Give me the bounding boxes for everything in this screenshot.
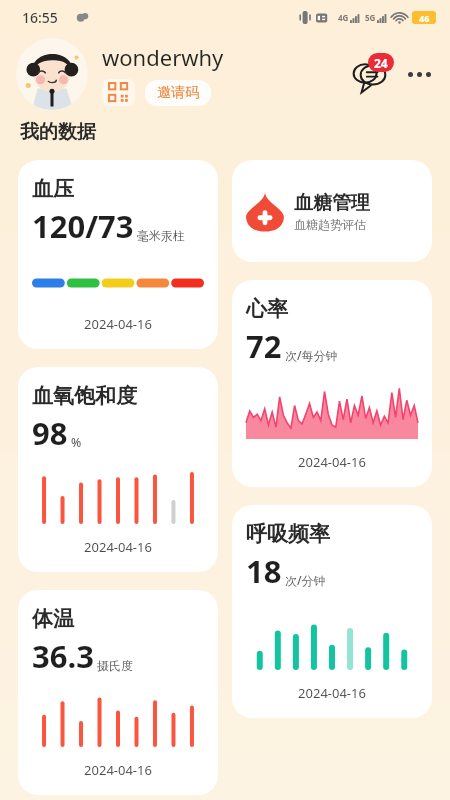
button[interactable]: 呼吸频率 — [232, 505, 432, 718]
staticText: 次/每分钟 — [285, 347, 338, 363]
staticText: 2024-04-16 — [246, 453, 418, 471]
staticText: 邀请码 — [157, 84, 199, 102]
staticText: 98 — [32, 412, 68, 454]
staticText: 5G — [365, 12, 376, 23]
button[interactable]: Messages — [350, 51, 396, 97]
staticText: 血糖趋势评估 — [294, 217, 366, 232]
staticText: 2024-04-16 — [32, 538, 204, 556]
staticText: 体温 — [32, 606, 74, 632]
staticText: 2024-04-16 — [32, 761, 204, 779]
staticText: 4G — [338, 12, 349, 23]
button[interactable]: 血压 — [18, 160, 218, 349]
staticText: 摄氏度 — [97, 658, 133, 673]
staticText: 120/73 — [32, 205, 134, 247]
button[interactable]: 血糖管理 — [232, 160, 432, 262]
staticText: 16:55 — [22, 8, 58, 27]
button[interactable]: 体温 — [18, 590, 218, 795]
staticText: 血压 — [32, 176, 74, 202]
staticText: 46 — [419, 12, 430, 24]
button[interactable]: 血氧饱和度 — [18, 367, 218, 572]
staticText: 心率 — [246, 296, 288, 322]
staticText: 2024-04-16 — [32, 315, 204, 333]
staticText: 24 — [374, 55, 388, 71]
button[interactable]: 心率 — [232, 280, 432, 487]
button[interactable]: QR code — [102, 79, 135, 106]
staticText: 18 — [246, 550, 282, 592]
staticText: 血氧饱和度 — [32, 383, 137, 409]
staticText: 呼吸频率 — [246, 521, 330, 547]
button[interactable]: Profile avatar — [16, 38, 88, 110]
staticText: 次/分钟 — [285, 572, 326, 588]
staticText: 72 — [246, 325, 282, 367]
staticText: wonderwhy — [102, 42, 224, 72]
staticText: 血糖管理 — [294, 191, 370, 215]
staticText: 毫米汞柱 — [137, 228, 185, 243]
button[interactable]: More options — [402, 57, 436, 91]
staticText: 2024-04-16 — [246, 684, 418, 702]
staticText: % — [71, 434, 82, 450]
staticText: 我的数据 — [20, 120, 96, 144]
staticText: 36.3 — [32, 635, 94, 677]
button[interactable]: 邀请码 — [145, 80, 211, 106]
